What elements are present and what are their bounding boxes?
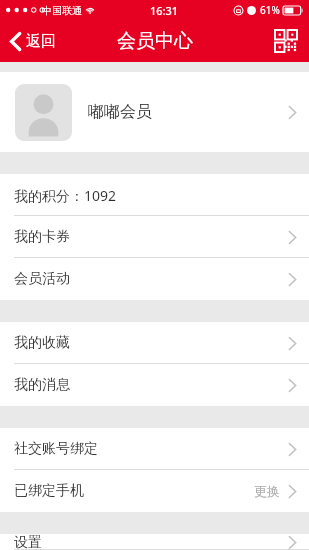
button[interactable]: 嘟嘟会员 [0, 72, 309, 152]
button[interactable]: 我的收藏 [0, 322, 309, 364]
staticText: 设置 [14, 534, 42, 550]
button[interactable]: 会员活动 [0, 258, 309, 300]
staticText: 嘟嘟会员 [88, 102, 152, 122]
staticText: 更换 [254, 483, 280, 499]
staticText: 会员活动 [14, 270, 70, 288]
staticText: 会员中心 [117, 29, 193, 53]
button[interactable]: 社交账号绑定 [0, 428, 309, 470]
staticText: 16:31 [150, 3, 179, 18]
button[interactable]: 设置 [0, 534, 309, 550]
staticText: 社交账号绑定 [14, 440, 98, 458]
staticText: 我的收藏 [14, 334, 70, 352]
button[interactable]: 我的积分：1092 [0, 174, 309, 216]
button[interactable]: 已绑定手机 [0, 470, 309, 512]
staticText: 已绑定手机 [14, 482, 84, 500]
button[interactable]: 我的消息 [0, 364, 309, 406]
staticText: 我的积分：1092 [14, 186, 117, 205]
staticText: 我的卡券 [14, 228, 70, 246]
staticText: 中国联通 [42, 4, 82, 17]
staticText: 返回 [26, 32, 56, 51]
button[interactable]: 扫一扫二维码 [271, 26, 301, 56]
staticText: 我的消息 [14, 376, 70, 394]
staticText: 61% [260, 3, 280, 17]
button[interactable]: 返回 [6, 26, 60, 57]
button[interactable]: 我的卡券 [0, 216, 309, 258]
